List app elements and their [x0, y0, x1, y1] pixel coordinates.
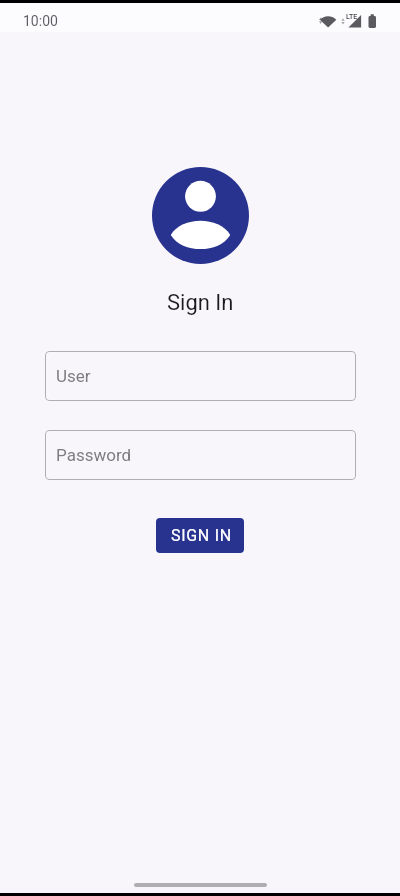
button[interactable]: SIGN IN: [156, 518, 244, 553]
button[interactable]: Password: [45, 430, 356, 480]
staticText: User: [56, 366, 91, 386]
staticText: SIGN IN: [171, 526, 232, 545]
button[interactable]: User: [45, 351, 356, 401]
staticText: Sign In: [167, 290, 234, 316]
staticText: LTE: [346, 13, 358, 21]
staticText: Password: [56, 445, 132, 465]
staticText: 10:00: [23, 13, 58, 29]
